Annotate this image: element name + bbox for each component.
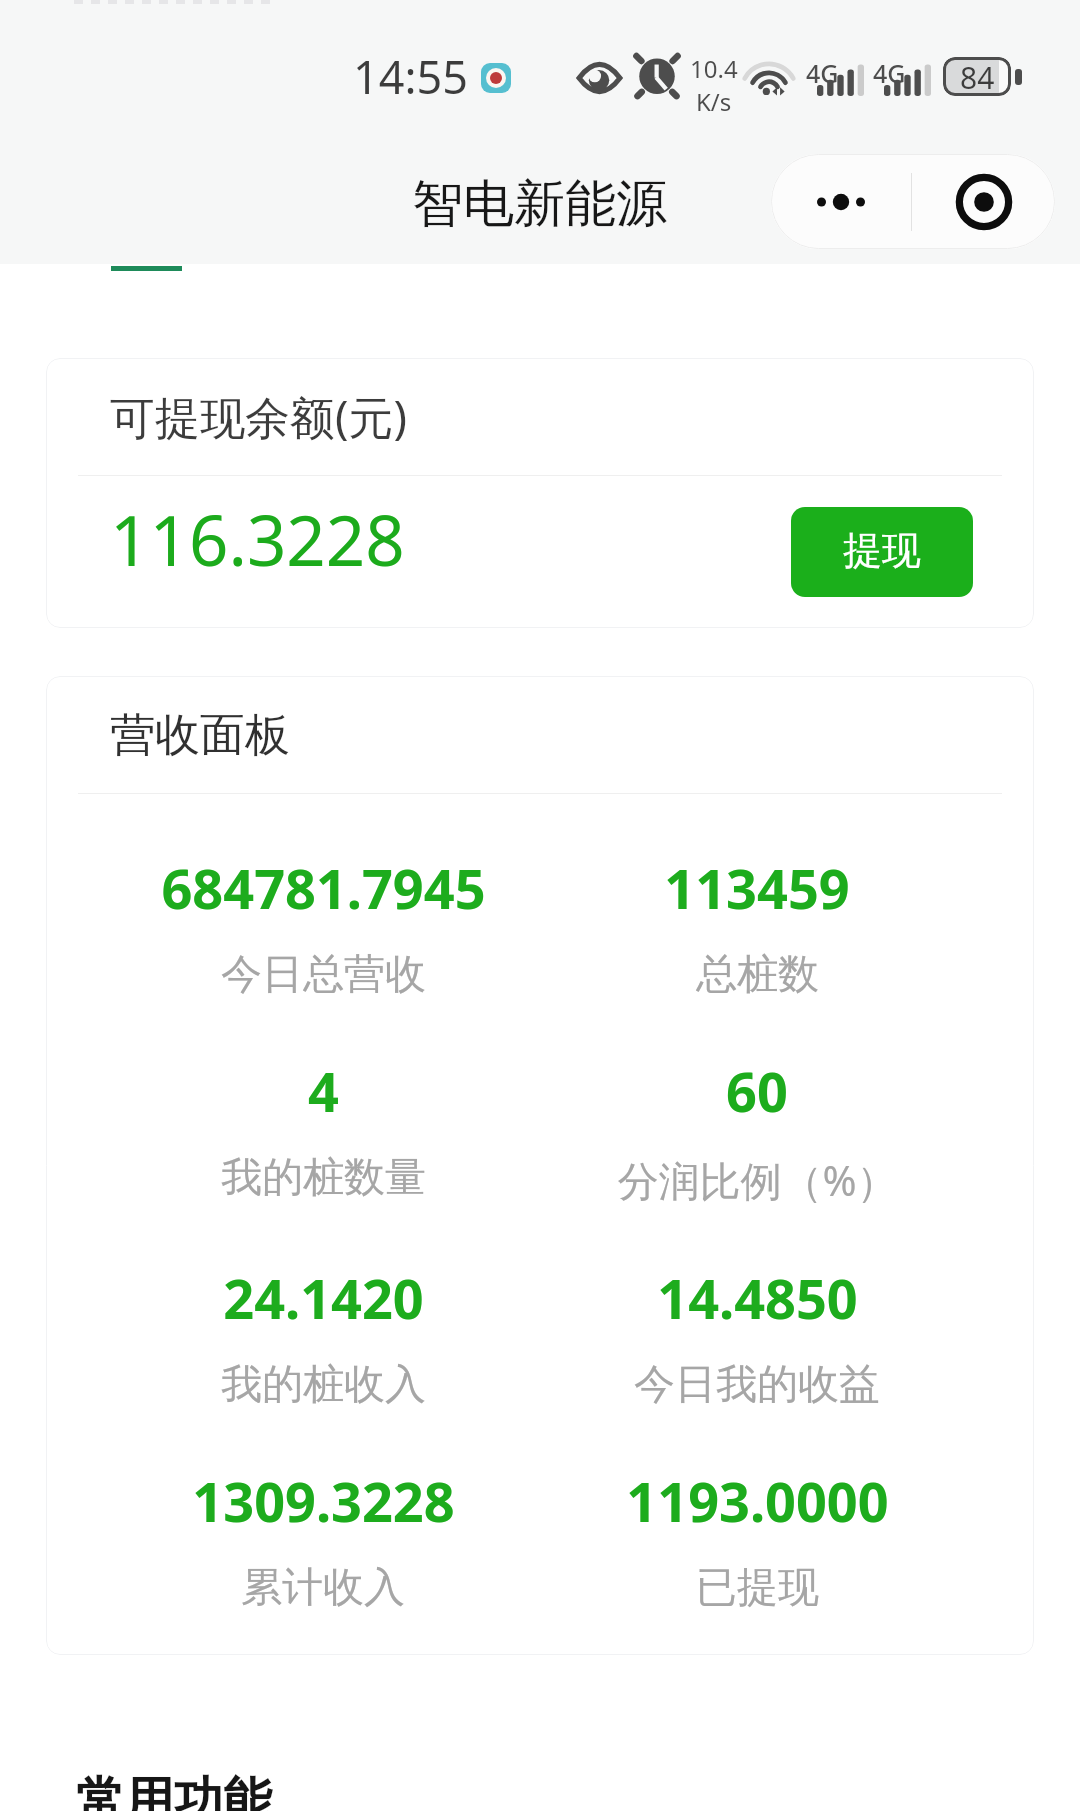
button[interactable]: 提现 [791,507,973,597]
button[interactable]: 4 [106,1054,540,1204]
button[interactable]: 1309.3228 [106,1464,540,1614]
staticText: 4G [873,56,906,90]
staticText: 累计收入 [241,1562,405,1614]
button[interactable]: More options [771,154,911,249]
staticText: 84 [960,57,995,96]
staticText: 已提现 [696,1562,819,1614]
staticText: 1193.0000 [626,1464,889,1538]
staticText: 24.1420 [223,1261,424,1335]
staticText: 1309.3228 [192,1464,455,1538]
staticText: 总桩数 [696,949,819,1001]
staticText: 常用功能 [76,1770,272,1811]
staticText: 113459 [664,851,850,925]
staticText: 今日总营收 [221,949,426,1001]
staticText: K/s [696,85,732,118]
staticText: 684781.7945 [161,851,486,925]
staticText: 提现 [843,526,921,575]
staticText: 4G [806,56,839,90]
button[interactable]: 684781.7945 [106,851,540,1001]
staticText: 我的桩收入 [221,1359,426,1411]
button[interactable]: 24.1420 [106,1261,540,1411]
button[interactable]: 60 [540,1054,974,1208]
staticText: 14:55 [353,46,469,107]
staticText: 分润比例（%） [617,1152,898,1208]
staticText: 可提现余额(元) [110,386,408,447]
button[interactable]: 113459 [540,851,974,1001]
staticText: 今日我的收益 [634,1359,880,1411]
staticText: 60 [726,1054,788,1128]
button[interactable]: 1193.0000 [540,1464,974,1614]
button[interactable]: Close mini program [912,154,1055,249]
staticText: 116.3228 [110,492,405,586]
staticText: 智电新能源 [412,172,667,236]
staticText: 营收面板 [110,707,290,764]
button[interactable]: 14.4850 [540,1261,974,1411]
staticText: 4 [308,1054,339,1128]
staticText: 14.4850 [657,1261,858,1335]
staticText: 我的桩数量 [221,1152,426,1204]
staticText: 10.4 [690,52,738,85]
